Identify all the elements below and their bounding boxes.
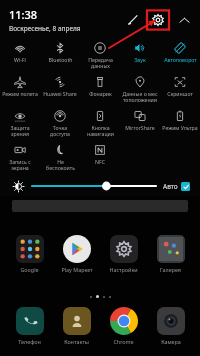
button[interactable]: Изменить: [122, 9, 144, 31]
staticText: Защита зрения: [10, 124, 30, 137]
staticText: 11:38: [9, 7, 38, 22]
staticText: MirrorShare: [125, 124, 155, 131]
staticText: Режим полета: [2, 90, 38, 97]
button[interactable]: Телефон: [6, 306, 53, 346]
staticText: Телефон: [18, 338, 41, 345]
button[interactable]: Bluetooth: [40, 40, 80, 74]
button[interactable]: Wi-Fi: [0, 40, 40, 74]
staticText: Контакты: [64, 338, 89, 345]
button[interactable]: Режим полета: [0, 74, 40, 108]
button[interactable]: Chrome: [100, 306, 147, 346]
staticText: Точка доступа: [50, 124, 70, 137]
button[interactable]: Настройки: [100, 234, 147, 274]
staticText: Автоповорот: [164, 56, 197, 63]
button[interactable]: Скриншот: [160, 74, 200, 108]
button[interactable]: Запись с экрана: [0, 142, 40, 176]
button[interactable]: Передача данных: [80, 40, 120, 74]
button[interactable]: Кнопка навигации: [80, 108, 120, 142]
staticText: Не беспокоить: [46, 158, 75, 171]
button[interactable]: Авто: [163, 182, 190, 191]
staticText: Авто: [163, 182, 178, 191]
button[interactable]: Фонарик: [80, 74, 120, 108]
staticText: Звук: [134, 56, 146, 63]
button[interactable]: MirrorShare: [120, 108, 160, 142]
button[interactable]: Google: [6, 234, 53, 274]
staticText: Запись с экрана: [9, 158, 31, 171]
staticText: Настройки: [109, 266, 138, 273]
staticText: Bluetooth: [48, 56, 73, 63]
staticText: Кнопка навигации: [87, 124, 114, 137]
staticText: Камера: [161, 338, 181, 345]
staticText: Режим Ультра: [162, 124, 198, 131]
staticText: Данные о мес тоположении: [122, 90, 158, 103]
staticText: Воскресенье, 8 апреля: [9, 24, 81, 33]
button[interactable]: Режим Ультра: [160, 108, 200, 142]
staticText: Huawei Share: [43, 90, 77, 97]
staticText: Wi-Fi: [14, 56, 26, 63]
button[interactable]: Яркость: [10, 178, 26, 194]
button[interactable]: Звук: [120, 40, 160, 74]
button[interactable]: Камера: [147, 306, 194, 346]
button[interactable]: [32, 179, 156, 193]
staticText: Play Маркет: [61, 266, 93, 273]
button[interactable]: Защита зрения: [0, 108, 40, 142]
staticText: Передача данных: [88, 56, 113, 69]
button[interactable]: Галерея: [147, 234, 194, 274]
button[interactable]: Точка доступа: [40, 108, 80, 142]
button[interactable]: Настройки: [146, 8, 170, 32]
staticText: Галерея: [160, 266, 181, 273]
staticText: Скриншот: [167, 90, 193, 97]
staticText: Chrome: [113, 338, 134, 345]
button[interactable]: Play Маркет: [53, 234, 100, 274]
button[interactable]: Контакты: [53, 306, 100, 346]
staticText: Фонарик: [89, 90, 112, 97]
button[interactable]: Данные о мес тоположении: [120, 74, 160, 108]
staticText: NFC: [95, 158, 105, 165]
staticText: Google: [20, 266, 39, 273]
button[interactable]: Свернуть: [174, 10, 194, 30]
button[interactable]: Huawei Share: [40, 74, 80, 108]
button[interactable]: Автоповорот: [160, 40, 200, 74]
button[interactable]: NFC: [80, 142, 120, 176]
button[interactable]: Не беспокоить: [40, 142, 80, 176]
